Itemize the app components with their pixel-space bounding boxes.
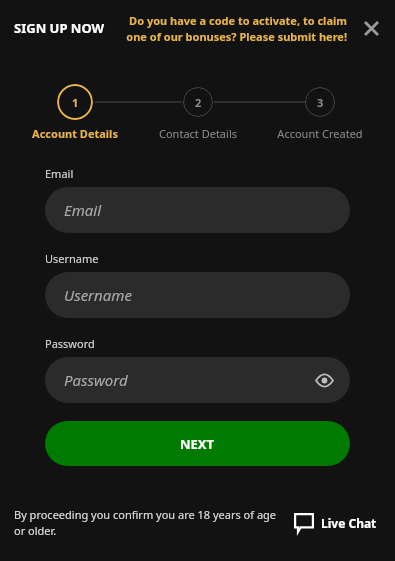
staticText: Username — [45, 251, 99, 266]
button[interactable]: NEXT — [45, 421, 350, 466]
button[interactable]: 2 — [138, 76, 258, 141]
staticText: Live Chat — [321, 515, 377, 531]
staticText: By proceeding you confirm you are 18 yea… — [14, 507, 280, 539]
staticText: Password — [45, 336, 95, 351]
staticText: 1 — [72, 95, 79, 110]
button[interactable]: Do you have a code to activate, to claim… — [115, 13, 347, 44]
staticText: Account Created — [277, 126, 363, 141]
staticText: Password — [64, 370, 128, 390]
staticText: Contact Details — [159, 126, 237, 141]
staticText: SIGN UP NOW — [14, 19, 105, 37]
staticText: 3 — [317, 95, 324, 110]
button[interactable]: Username — [45, 272, 350, 318]
button[interactable]: Show password — [312, 368, 336, 392]
button[interactable]: Close — [355, 12, 387, 44]
button[interactable]: 1 — [15, 76, 135, 141]
staticText: Account Details — [32, 126, 118, 141]
staticText: Do you have a code to activate, to claim… — [115, 13, 347, 44]
staticText: Username — [64, 285, 132, 305]
staticText: Email — [64, 200, 102, 220]
other: Live Chat — [294, 513, 314, 533]
staticText: NEXT — [180, 435, 215, 453]
button[interactable]: 3 — [260, 76, 380, 141]
button[interactable]: Live Chat — [290, 509, 381, 537]
staticText: 2 — [195, 95, 202, 110]
staticText: Email — [45, 166, 74, 181]
button[interactable]: Email — [45, 187, 350, 233]
button[interactable]: Password — [45, 357, 350, 403]
